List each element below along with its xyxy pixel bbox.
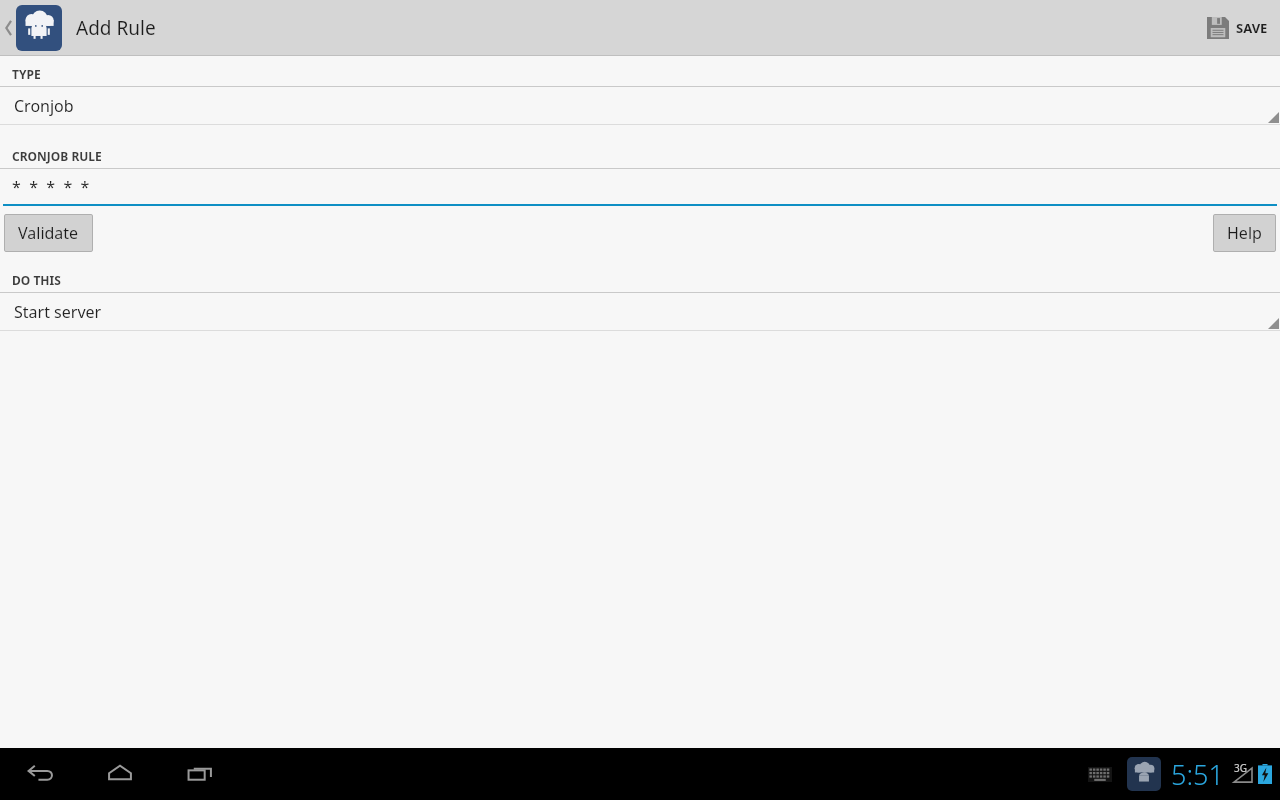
staticText: Add Rule: [76, 15, 156, 41]
button[interactable]: Start server: [0, 293, 1280, 330]
staticText: Cronjob: [14, 95, 74, 117]
button[interactable]: * * * * *: [0, 169, 1280, 204]
button[interactable]: Cronjob: [0, 87, 1280, 124]
button[interactable]: Back: [14, 748, 66, 800]
staticText: Start server: [14, 301, 102, 323]
button[interactable]: Navigate up: [0, 0, 62, 55]
staticText: Help: [1227, 222, 1262, 244]
button[interactable]: Home: [94, 748, 146, 800]
staticText: CRONJOB RULE: [12, 148, 102, 164]
staticText: SAVE: [1236, 19, 1268, 37]
button[interactable]: Help: [1213, 214, 1276, 252]
staticText: DO THIS: [12, 272, 61, 288]
staticText: * * * * *: [12, 176, 90, 198]
button[interactable]: Validate: [4, 214, 93, 252]
staticText: TYPE: [12, 66, 41, 82]
staticText: Validate: [18, 222, 79, 244]
staticText: 5:51: [1171, 756, 1224, 793]
button[interactable]: Keyboard: [1079, 753, 1121, 795]
button[interactable]: App notification: [1127, 757, 1161, 791]
button[interactable]: SAVE: [1195, 0, 1280, 55]
button[interactable]: Recent apps: [174, 748, 226, 800]
staticText: 3G: [1234, 761, 1247, 775]
